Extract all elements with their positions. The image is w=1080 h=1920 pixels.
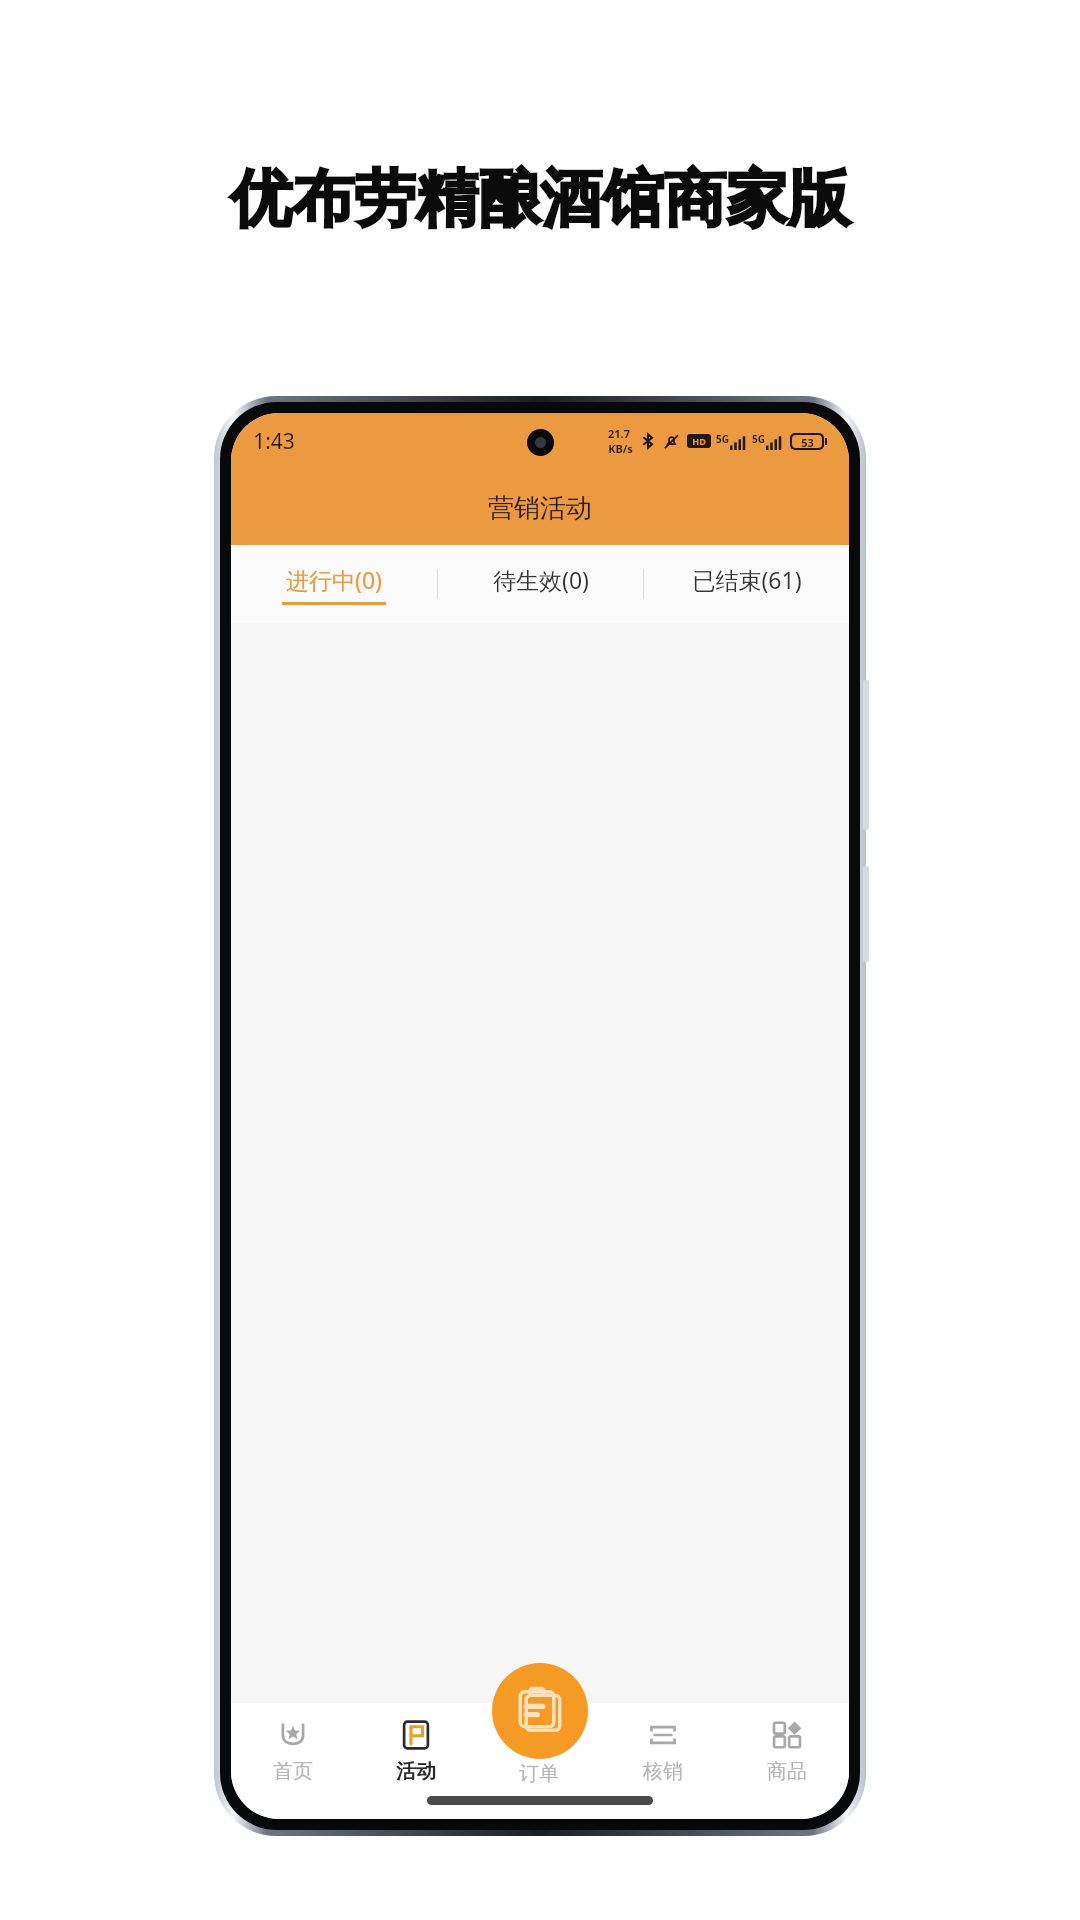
button[interactable]: 活动 [354,1703,477,1819]
staticText: 营销活动 [488,492,592,525]
button[interactable]: 进行中(0) [231,545,437,623]
staticText: 优布劳精酿酒馆商家版 [230,160,850,238]
button[interactable]: 订单 [492,1663,588,1759]
staticText: 5G [716,432,729,446]
button[interactable]: 核销 [601,1703,725,1819]
staticText: HD [692,435,706,447]
button[interactable]: 首页 [231,1703,354,1819]
staticText: 已结束(61) [692,564,802,595]
staticText: 1:43 [253,427,295,456]
staticText: 21.7 [608,426,630,441]
staticText: 53 [801,435,814,448]
staticText: 5G [752,432,765,446]
staticText: 核销 [643,1759,683,1784]
staticText: 活动 [396,1759,436,1784]
button[interactable]: 已结束(61) [644,545,849,623]
button[interactable]: 订单 [477,1703,601,1819]
staticText: 商品 [767,1759,807,1784]
staticText: 进行中(0) [286,564,382,595]
staticText: 待生效(0) [493,564,589,595]
staticText: 订单 [519,1761,559,1786]
staticText: 首页 [273,1759,313,1784]
staticText: KB/s [608,441,633,456]
button[interactable]: 商品 [725,1703,849,1819]
button[interactable]: 待生效(0) [438,545,643,623]
